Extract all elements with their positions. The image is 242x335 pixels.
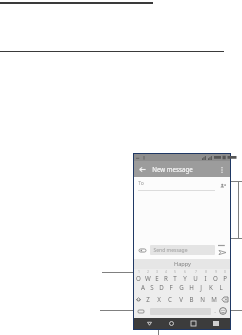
button[interactable]: L (216, 281, 226, 293)
staticText: New message (152, 165, 193, 173)
button[interactable]: Symbols (136, 305, 146, 317)
button[interactable]: F (166, 281, 176, 293)
staticText: Q (136, 274, 141, 281)
button[interactable]: X (153, 293, 164, 305)
button[interactable]: Recent apps (189, 319, 198, 328)
button[interactable]: To (134, 177, 230, 194)
button[interactable]: G (176, 281, 186, 293)
staticText: J (200, 283, 202, 291)
staticText: 8 (205, 269, 207, 274)
staticText: 1 (138, 269, 140, 274)
button[interactable]: Add contact (218, 181, 228, 191)
staticText: To (138, 180, 144, 187)
button[interactable]: 6 (180, 269, 190, 281)
button[interactable]: Backspace (219, 293, 230, 305)
staticText: G (179, 283, 184, 291)
staticText: K (209, 283, 213, 291)
button[interactable]: B (186, 293, 197, 305)
staticText: Y (183, 274, 187, 281)
staticText: L (219, 283, 223, 291)
staticText: S (150, 283, 154, 291)
staticText: 9 (215, 269, 217, 274)
staticText: I (204, 274, 207, 281)
button[interactable]: A (138, 281, 147, 293)
button[interactable]: M (208, 293, 219, 305)
button[interactable]: D (156, 281, 166, 293)
staticText: F (169, 283, 173, 291)
button[interactable]: More options (216, 164, 227, 175)
staticText: H (189, 283, 194, 291)
staticText: U (193, 274, 198, 281)
staticText: 7 (195, 269, 197, 274)
staticText: N (200, 295, 205, 303)
button[interactable]: 3 (152, 269, 161, 281)
staticText: 5 (174, 269, 176, 274)
button[interactable]: Send (217, 247, 227, 257)
button[interactable]: Happy (134, 259, 230, 269)
staticText: X (157, 295, 161, 303)
button[interactable]: K (206, 281, 216, 293)
button[interactable]: 2 (143, 269, 152, 281)
staticText: 4 (165, 269, 167, 274)
staticText: T (173, 274, 177, 281)
staticText: B (189, 295, 194, 303)
button[interactable]: J (196, 281, 206, 293)
button[interactable]: S (147, 281, 156, 293)
staticText: A (141, 283, 145, 291)
staticText: E (155, 274, 159, 281)
button[interactable]: 4 (161, 269, 170, 281)
staticText: 6 (184, 269, 186, 274)
button[interactable]: Home (167, 319, 176, 328)
staticText: W (145, 274, 151, 281)
staticText: C (168, 295, 172, 303)
button[interactable]: V (175, 293, 186, 305)
button[interactable]: H (186, 281, 196, 293)
button[interactable]: Keyboard (211, 319, 220, 328)
staticText: M (211, 295, 217, 303)
button[interactable]: Attach (137, 245, 148, 256)
staticText: Send message (153, 247, 188, 254)
button[interactable]: N (197, 293, 208, 305)
staticText: P (223, 274, 227, 281)
staticText: D (159, 283, 164, 291)
button[interactable]: Shift (134, 293, 143, 305)
button[interactable]: 1 (134, 269, 143, 281)
staticText: . (214, 307, 216, 315)
staticText: R (164, 274, 168, 281)
button[interactable]: 0 (220, 269, 230, 281)
button[interactable]: 5 (170, 269, 180, 281)
staticText: 2 (147, 269, 149, 274)
button[interactable]: Emoji (218, 306, 228, 316)
button[interactable]: 8 (200, 269, 210, 281)
button[interactable]: Back (137, 164, 148, 175)
staticText: V (179, 295, 183, 303)
button[interactable]: 9 (210, 269, 220, 281)
staticText: Z (146, 295, 150, 303)
staticText: 0 (224, 269, 226, 274)
button[interactable]: Send message (150, 245, 215, 255)
button[interactable]: C (164, 293, 175, 305)
staticText: 3 (156, 269, 158, 274)
staticText: Happy (174, 260, 191, 268)
button[interactable]: Z (143, 293, 153, 305)
button[interactable]: 7 (190, 269, 200, 281)
button[interactable]: Back (145, 319, 154, 328)
staticText: O (213, 274, 218, 281)
